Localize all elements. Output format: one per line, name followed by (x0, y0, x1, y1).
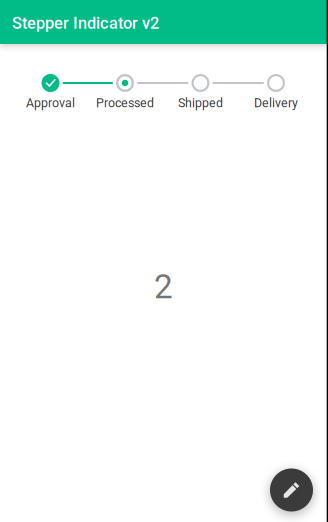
staticText: Delivery (254, 96, 298, 110)
staticText: 2 (154, 267, 173, 306)
button[interactable]: Edit (263, 462, 319, 518)
staticText: Approval (26, 96, 75, 110)
staticText: Processed (96, 96, 154, 110)
button[interactable]: Approval (13, 72, 87, 112)
button[interactable]: Processed (88, 72, 162, 112)
button[interactable]: Delivery (239, 72, 313, 112)
button[interactable]: Shipped (163, 72, 237, 112)
staticText: Stepper Indicator v2 (12, 14, 159, 33)
staticText: Shipped (178, 96, 223, 110)
